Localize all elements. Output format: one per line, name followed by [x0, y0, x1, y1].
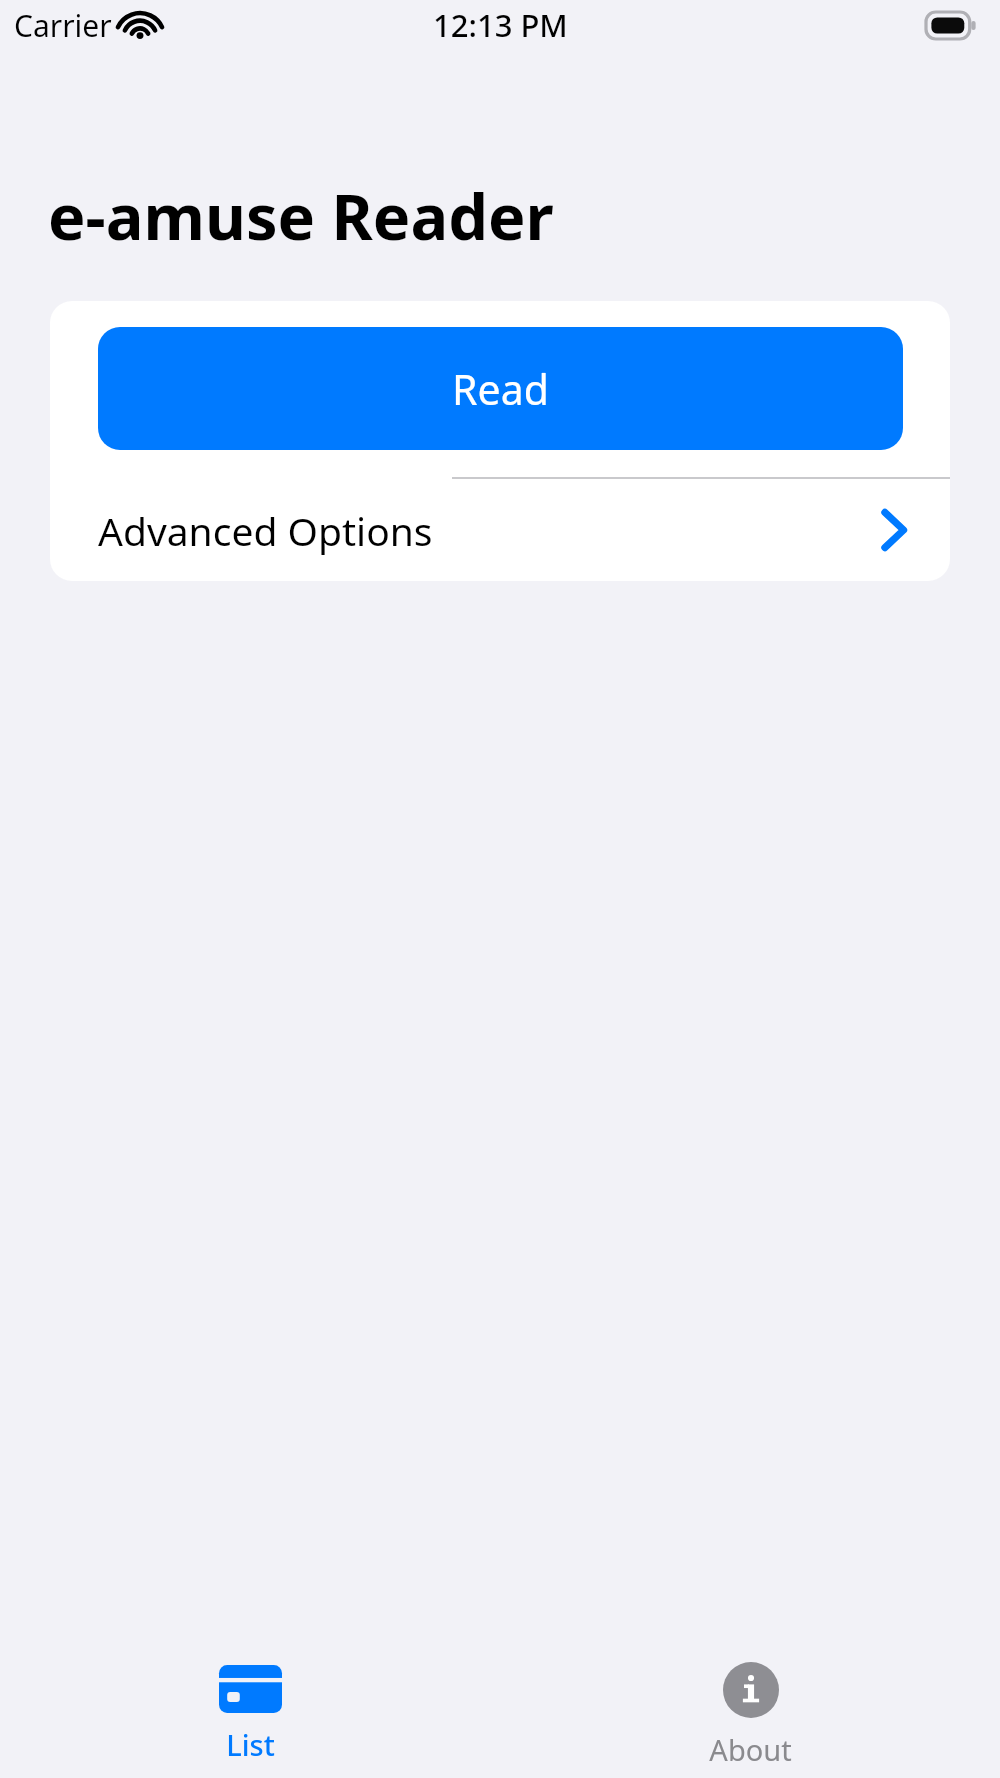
staticText: Carrier [14, 5, 112, 46]
button[interactable]: List [0, 1642, 500, 1772]
staticText: Read [452, 361, 549, 417]
button[interactable]: Read [98, 327, 903, 450]
staticText: List [226, 1725, 275, 1764]
button[interactable]: Advanced Options [50, 479, 950, 581]
staticText: 12:13 PM [433, 4, 568, 46]
staticText: Advanced Options [98, 504, 433, 557]
staticText: e-amuse Reader [48, 173, 554, 259]
button[interactable]: About [500, 1642, 1000, 1772]
staticText: About [709, 1730, 792, 1769]
